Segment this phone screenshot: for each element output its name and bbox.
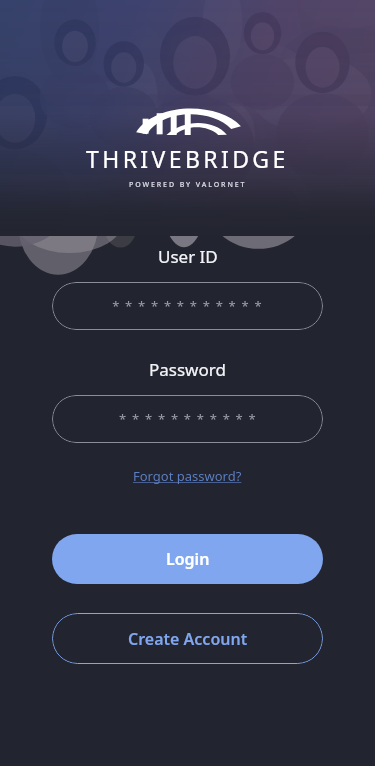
staticText: Login (166, 548, 210, 570)
staticText: THRIVEBRIDGE (86, 143, 289, 174)
staticText: User ID (158, 245, 218, 268)
button[interactable]: * * * * * * * * * * * (52, 395, 323, 443)
button[interactable]: Forgot password? (129, 464, 246, 488)
button[interactable]: * * * * * * * * * * * * (52, 282, 323, 330)
staticText: Create Account (128, 628, 248, 650)
button[interactable]: Login (52, 534, 323, 584)
staticText: * * * * * * * * * * * (119, 410, 257, 428)
button[interactable]: Create Account (52, 613, 323, 664)
staticText: Forgot password? (133, 467, 242, 485)
staticText: POWERED BY VALORNET (129, 180, 247, 190)
staticText: * * * * * * * * * * * * (112, 297, 263, 315)
staticText: Password (149, 358, 226, 381)
